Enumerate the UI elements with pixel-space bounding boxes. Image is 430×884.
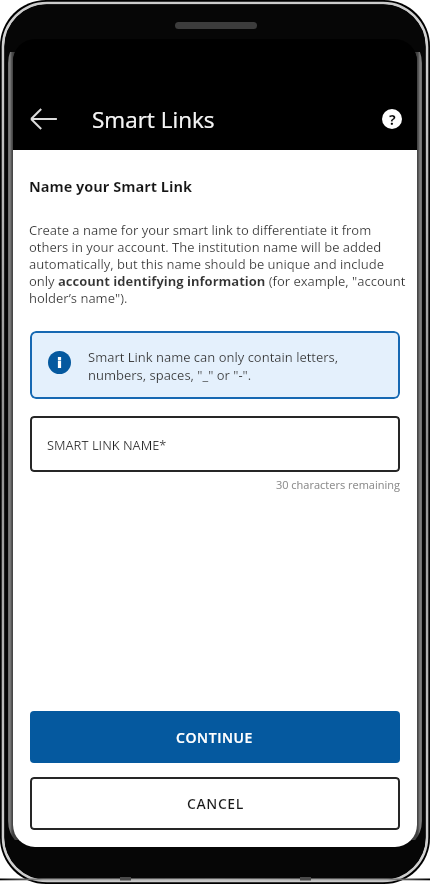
button[interactable]: CONTINUE <box>30 711 400 763</box>
button[interactable]: SMART LINK NAME* <box>30 416 400 472</box>
staticText: Name your Smart Link <box>29 177 192 197</box>
button[interactable]: Help <box>368 95 416 143</box>
staticText: ? <box>389 110 396 129</box>
staticText: Smart Links <box>92 104 215 135</box>
staticText: CONTINUE <box>176 728 254 747</box>
staticText: Create a name for your smart link to dif… <box>29 221 407 307</box>
staticText: SMART LINK NAME* <box>47 436 167 453</box>
button[interactable]: CANCEL <box>30 777 400 830</box>
staticText: Smart Link name can only contain letters… <box>88 348 344 383</box>
staticText: CANCEL <box>187 794 244 813</box>
button[interactable]: Smart Link name can only contain letters… <box>30 331 400 399</box>
staticText: 30 characters remaining <box>30 477 400 492</box>
button[interactable]: Back <box>20 95 68 143</box>
